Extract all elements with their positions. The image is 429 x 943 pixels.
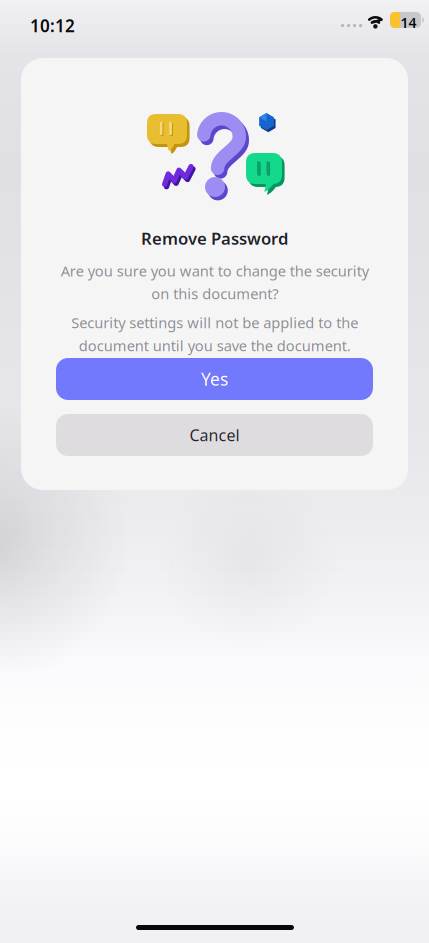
staticText: Security settings will not be applied to… <box>71 313 358 356</box>
staticText: Are you sure you want to change the secu… <box>60 261 368 304</box>
staticText: 14 <box>400 13 416 32</box>
button[interactable]: Yes <box>56 358 373 400</box>
staticText: Remove Password <box>141 227 288 250</box>
staticText: 10:12 <box>30 14 75 37</box>
staticText: Cancel <box>189 424 239 446</box>
button[interactable]: Cancel <box>56 414 373 456</box>
staticText: Yes <box>201 367 228 391</box>
